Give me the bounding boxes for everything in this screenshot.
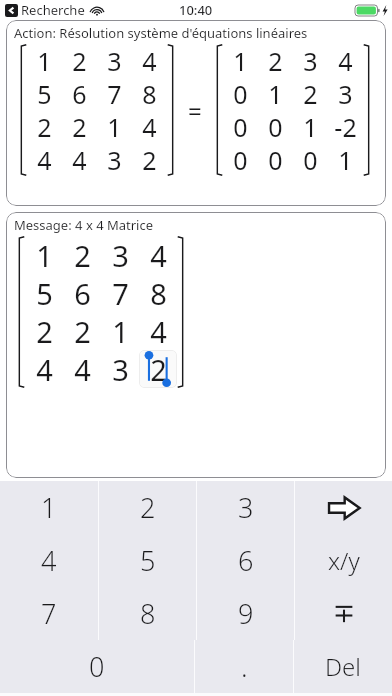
staticText: 7 (41, 595, 57, 632)
button[interactable]: 6 (197, 534, 294, 587)
staticText: 2 (303, 77, 318, 110)
button[interactable]: . (195, 640, 293, 693)
staticText: 1 (112, 312, 129, 350)
button[interactable]: Back to Recherche (5, 1, 104, 19)
staticText: 4 (142, 44, 157, 77)
staticText: 10:40 (179, 1, 213, 19)
staticText: 1 (268, 77, 283, 110)
staticText: 0 (89, 648, 105, 685)
button[interactable]: 3 (197, 481, 294, 534)
staticText: 1 (233, 44, 248, 77)
staticText: Recherche (21, 1, 85, 19)
staticText: 4 (36, 350, 53, 388)
staticText: 3 (238, 489, 254, 526)
staticText: x/y (328, 544, 360, 577)
staticText: 2 (142, 143, 157, 176)
staticText: 4 (338, 44, 353, 77)
staticText: = (188, 94, 202, 127)
staticText: 7 (112, 274, 129, 312)
staticText: 5 (36, 274, 53, 312)
button[interactable]: 4 (0, 534, 98, 587)
staticText: 1 (338, 143, 353, 176)
staticText: 4 (150, 236, 167, 274)
staticText: . (241, 648, 248, 685)
staticText: 6 (238, 542, 254, 579)
button[interactable]: 9 (197, 587, 294, 640)
staticText: 2 (37, 110, 52, 143)
staticText: 4 (142, 110, 157, 143)
staticText: 0 (233, 143, 248, 176)
staticText: 4 (74, 350, 91, 388)
button[interactable]: Del (294, 640, 392, 693)
staticText: 9 (238, 595, 254, 632)
staticText: 0 (268, 143, 283, 176)
staticText: 5 (37, 77, 52, 110)
button[interactable]: 8 (99, 587, 196, 640)
button[interactable]: Message: 4 x 4 Matrice (6, 212, 386, 478)
button[interactable]: 0 (0, 640, 194, 693)
staticText: 1 (41, 489, 57, 526)
staticText: Message: 4 x 4 Matrice (14, 216, 154, 234)
staticText: 2 (36, 312, 53, 350)
staticText: 4 (150, 312, 167, 350)
button[interactable]: Plus minus (295, 587, 392, 640)
staticText: 0 (233, 77, 248, 110)
staticText: 5 (140, 542, 156, 579)
button[interactable]: 5 (99, 534, 196, 587)
button[interactable]: Action: Résolution système d'équations l… (6, 20, 386, 206)
staticText: 2 (140, 489, 156, 526)
staticText: 2 (150, 350, 167, 388)
staticText: 2 (74, 312, 91, 350)
staticText: 1 (36, 236, 53, 274)
staticText: 6 (72, 77, 87, 110)
staticText: Del (325, 650, 361, 683)
staticText: 4 (72, 143, 87, 176)
button[interactable]: 7 (0, 587, 98, 640)
staticText: 3 (338, 77, 353, 110)
staticText: 0 (303, 143, 318, 176)
button[interactable]: Enter (295, 481, 392, 534)
staticText: 3 (112, 236, 129, 274)
staticText: 2 (268, 44, 283, 77)
staticText: 1 (37, 44, 52, 77)
staticText: Action: Résolution système d'équations l… (14, 24, 308, 42)
staticText: 1 (107, 110, 122, 143)
staticText: 8 (150, 274, 167, 312)
staticText: 2 (72, 110, 87, 143)
staticText: 0 (233, 110, 248, 143)
staticText: 0 (268, 110, 283, 143)
button[interactable]: 1 (0, 481, 98, 534)
staticText: 3 (107, 44, 122, 77)
button[interactable]: x/y (295, 534, 392, 587)
staticText: 2 (72, 44, 87, 77)
staticText: 7 (107, 77, 122, 110)
staticText: 1 (303, 110, 318, 143)
staticText: 6 (74, 274, 91, 312)
button[interactable]: 2 (99, 481, 196, 534)
staticText: 8 (140, 595, 156, 632)
staticText: 3 (303, 44, 318, 77)
staticText: 4 (37, 143, 52, 176)
staticText: 3 (112, 350, 129, 388)
staticText: 4 (41, 542, 57, 579)
staticText: 8 (142, 77, 157, 110)
staticText: 2 (74, 236, 91, 274)
staticText: -2 (334, 110, 357, 143)
staticText: 3 (107, 143, 122, 176)
